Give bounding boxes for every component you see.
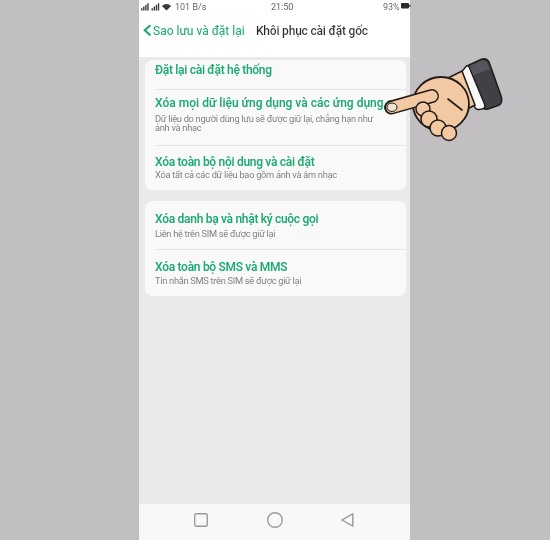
staticText: Tin nhắn SMS trên SIM sẽ được giữ lại — [155, 275, 302, 286]
button[interactable] — [188, 507, 214, 533]
button[interactable]: Đặt lại cài đặt hệ thống — [145, 60, 406, 89]
staticText: Đặt lại cài đặt hệ thống — [155, 63, 272, 77]
staticText: ảnh và nhạc — [155, 122, 202, 133]
button[interactable]: Xóa toàn bộ nội dung và cài đặt — [145, 145, 406, 190]
button[interactable]: Xóa toàn bộ SMS và MMS — [145, 248, 406, 296]
staticText: 93% — [383, 2, 400, 13]
staticText: Xóa toàn bộ nội dung và cài đặt — [155, 155, 315, 169]
button[interactable] — [262, 507, 288, 533]
staticText: Xóa toàn bộ SMS và MMS — [155, 260, 288, 274]
button[interactable]: Xóa mọi dữ liệu ứng dụng và các ứng dụng… — [145, 89, 406, 145]
staticText: Xóa mọi dữ liệu ứng dụng và các ứng dụng… — [155, 96, 403, 110]
staticText: Dữ liệu do người dùng lưu sẽ được giữ lạ… — [155, 113, 373, 124]
button[interactable]: Sao lưu và đặt lại — [139, 24, 251, 56]
staticText: 21:50 — [271, 2, 294, 13]
staticText: Xóa danh bạ và nhật ký cuộc gọi — [155, 212, 319, 226]
staticText: Xóa tất cả các dữ liệu bao gồm ảnh và âm… — [155, 169, 337, 180]
staticText: 101 B/s — [175, 2, 207, 13]
button[interactable] — [334, 507, 360, 533]
staticText: Sao lưu và đặt lại — [153, 24, 245, 38]
button[interactable]: Xóa danh bạ và nhật ký cuộc gọi — [145, 201, 406, 248]
staticText: Liên hệ trên SIM sẽ được giữ lại — [155, 228, 276, 239]
staticText: Khôi phục cài đặt gốc — [256, 24, 368, 38]
